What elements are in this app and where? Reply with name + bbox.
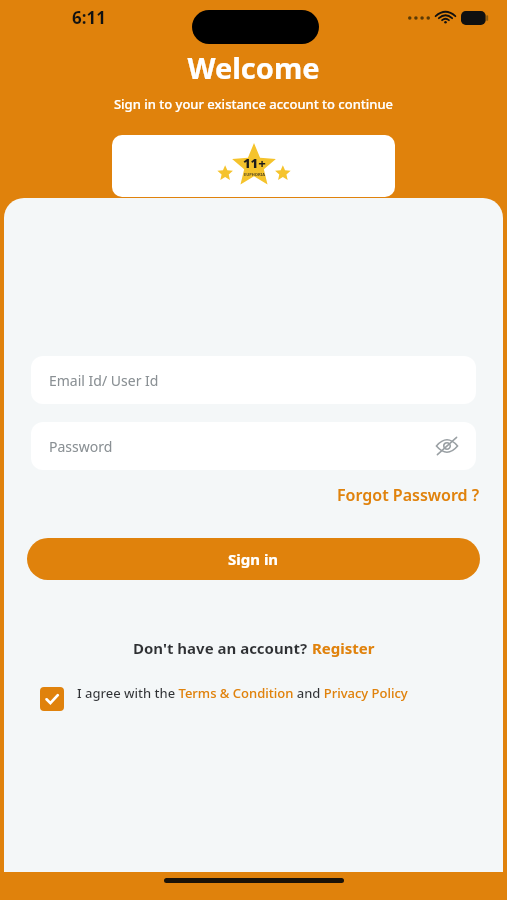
button[interactable]: Password [31,422,476,470]
staticText: Welcome [0,48,507,87]
button[interactable]: Email Id/ User Id [31,356,476,404]
button[interactable]: Toggle password visibility [432,431,462,461]
staticText: Register [312,638,375,658]
button[interactable]: Forgot Password ? [337,484,480,506]
button[interactable]: Sign in [27,538,480,580]
button[interactable]: I agree with the Terms & Condition and P… [77,684,408,702]
staticText: Email Id/ User Id [49,371,159,390]
staticText: EUPHORIA [244,172,265,177]
button[interactable]: 11+ [112,135,395,197]
staticText: 11+ [243,154,266,172]
staticText: Sign in to your existance account to con… [0,95,507,113]
button[interactable]: Agree to terms [40,687,64,711]
staticText: Sign in [228,549,279,569]
button[interactable]: Register [312,638,375,658]
staticText: 6:11 [72,6,106,29]
staticText: Forgot Password ? [337,484,480,506]
staticText: Password [49,437,113,456]
staticText: Don't have an account? [133,638,312,658]
